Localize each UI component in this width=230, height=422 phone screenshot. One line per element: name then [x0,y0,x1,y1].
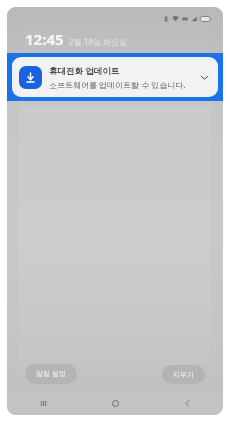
staticText: 소프트웨어를 업데이트할 수 있습니다. [49,79,186,90]
button[interactable]: Back [151,391,223,415]
button[interactable]: 휴대전화 업데이트 [12,57,218,97]
button[interactable]: 지우기 [162,365,205,384]
button[interactable]: Expand notification [196,69,212,85]
button[interactable]: Recent apps [7,391,79,415]
button[interactable]: Home [79,391,151,415]
staticText: 2월 18일 화요일 [69,36,127,47]
staticText: 휴대전화 업데이트 [49,65,120,77]
staticText: 알림 설정 [36,369,66,379]
button[interactable]: 알림 설정 [25,364,77,384]
staticText: 12:45 [25,29,64,49]
staticText: 지우기 [173,370,194,379]
